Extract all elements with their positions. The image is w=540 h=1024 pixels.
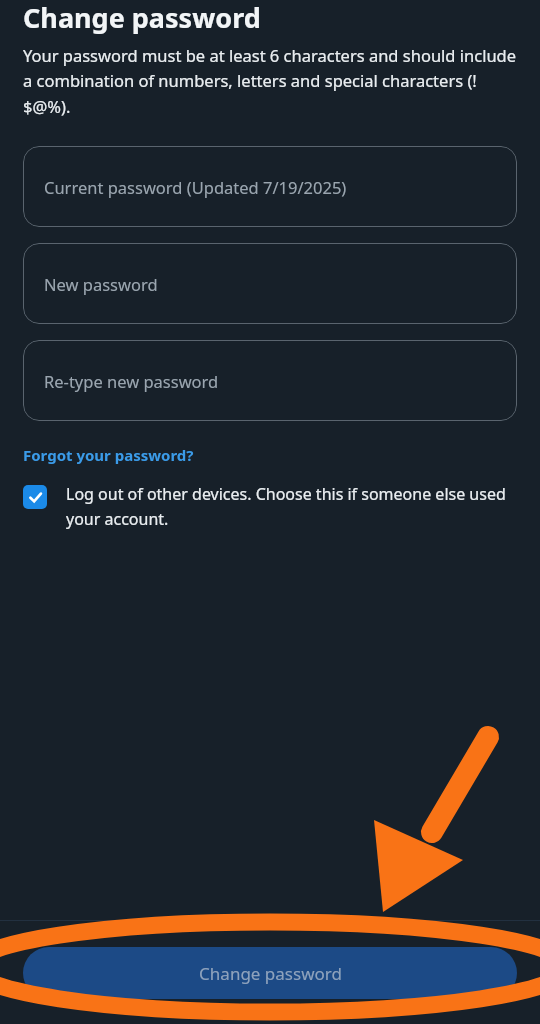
- staticText: Your password must be at least 6 charact…: [23, 44, 520, 118]
- button[interactable]: New password: [23, 243, 517, 324]
- other: Log out of other devices: [23, 485, 47, 509]
- button[interactable]: Log out of other devices: [0, 483, 540, 529]
- button[interactable]: Forgot your password?: [23, 445, 194, 465]
- staticText: New password: [44, 273, 158, 295]
- staticText: Log out of other devices. Choose this if…: [66, 483, 520, 529]
- staticText: Forgot your password?: [23, 445, 194, 465]
- staticText: Change password: [23, 0, 261, 36]
- button[interactable]: Current password (Updated 7/19/2025): [23, 146, 517, 227]
- staticText: Change password: [199, 962, 342, 985]
- staticText: Re-type new password: [44, 370, 219, 392]
- button[interactable]: Change password: [23, 947, 517, 999]
- staticText: Current password (Updated 7/19/2025): [44, 176, 347, 198]
- button[interactable]: Re-type new password: [23, 340, 517, 421]
